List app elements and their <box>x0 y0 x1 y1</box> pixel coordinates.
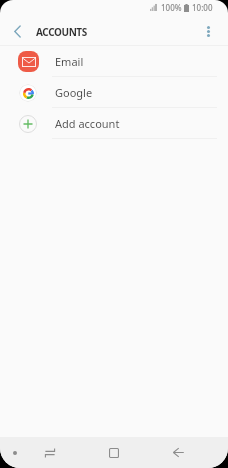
staticText: Add account <box>55 116 120 131</box>
button[interactable]: Navigate up <box>0 18 34 44</box>
button[interactable]: Back <box>167 437 189 468</box>
button[interactable]: Add account <box>0 108 228 139</box>
button[interactable]: Email <box>0 46 228 77</box>
staticText: 100% <box>161 2 182 13</box>
staticText: ACCOUNTS <box>36 25 87 39</box>
button[interactable]: Home <box>103 437 125 468</box>
button[interactable]: More options <box>195 18 221 44</box>
staticText: 10:00 <box>192 2 213 13</box>
button[interactable]: Google <box>0 77 228 108</box>
staticText: Google <box>55 85 93 100</box>
button[interactable]: Recent apps <box>39 437 61 468</box>
staticText: Email <box>55 54 84 69</box>
button[interactable]: Show keyboard <box>4 437 25 468</box>
